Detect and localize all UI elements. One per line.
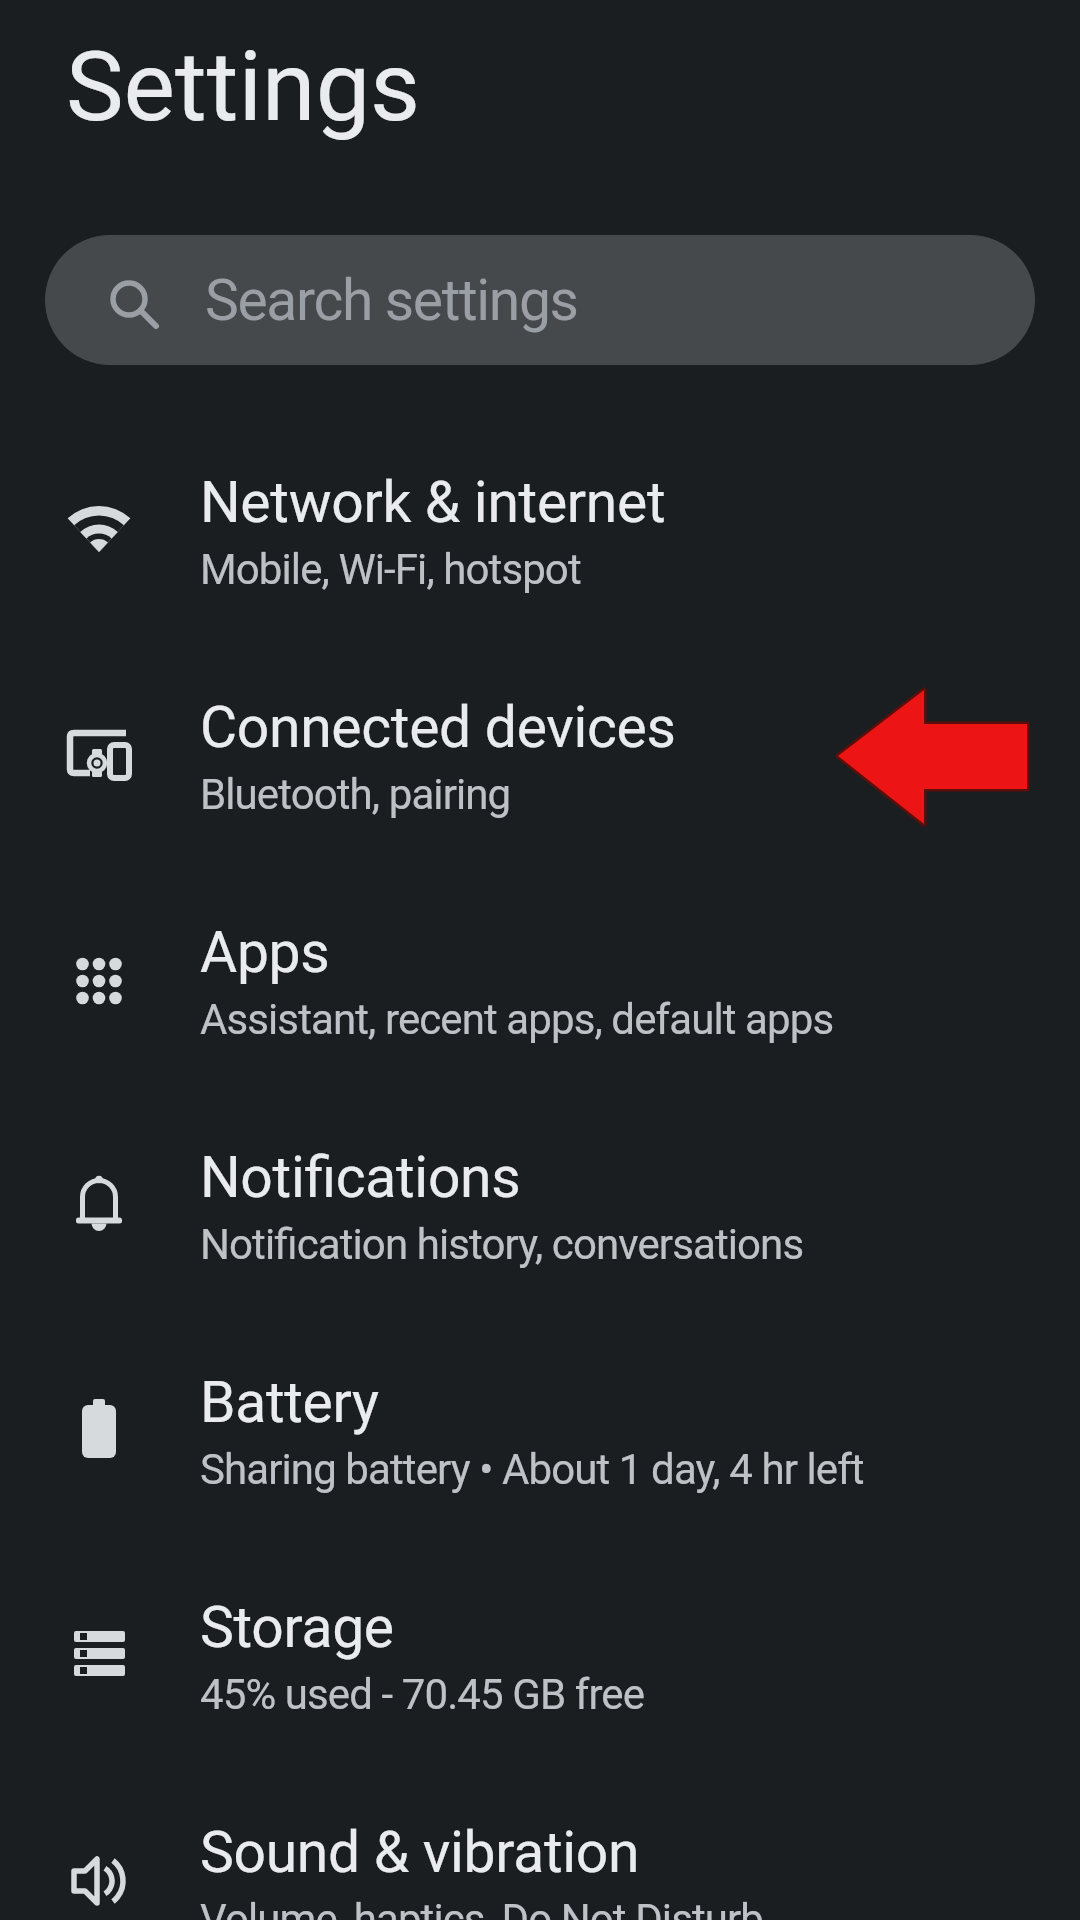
staticText: Mobile, Wi-Fi, hotspot	[200, 545, 581, 594]
staticText: Search settings	[205, 267, 578, 334]
button[interactable]: Sound & vibration	[0, 1768, 1080, 1920]
staticText: Battery	[200, 1369, 379, 1436]
staticText: Assistant, recent apps, default apps	[200, 995, 834, 1044]
button[interactable]: Apps	[0, 868, 1080, 1093]
button[interactable]: Search settings	[45, 235, 1035, 365]
staticText: Network & internet	[200, 469, 666, 536]
button[interactable]: Network & internet	[0, 418, 1080, 643]
staticText: Bluetooth, pairing	[200, 770, 511, 819]
staticText: Settings	[66, 30, 421, 144]
staticText: Sound & vibration	[200, 1819, 640, 1886]
staticText: Notifications	[200, 1144, 521, 1211]
staticText: 45% used - 70.45 GB free	[200, 1670, 645, 1719]
button[interactable]: Storage	[0, 1543, 1080, 1768]
button[interactable]: Notifications	[0, 1093, 1080, 1318]
button[interactable]: Connected devices	[0, 643, 1080, 868]
staticText: Connected devices	[200, 694, 676, 761]
staticText: Volume, haptics, Do Not Disturb	[200, 1895, 764, 1920]
button[interactable]: Battery	[0, 1318, 1080, 1543]
staticText: Storage	[200, 1594, 394, 1661]
staticText: Notification history, conversations	[200, 1220, 804, 1269]
staticText: Apps	[200, 919, 330, 986]
staticText: Sharing battery • About 1 day, 4 hr left	[200, 1445, 864, 1494]
